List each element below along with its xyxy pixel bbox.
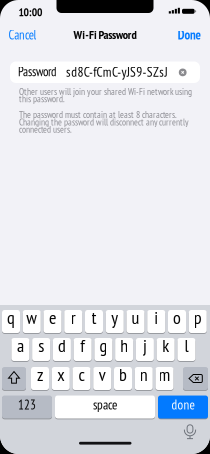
button[interactable]: b	[114, 366, 132, 390]
staticText: space	[93, 396, 117, 413]
staticText: a	[17, 334, 24, 357]
staticText: n	[140, 363, 148, 386]
staticText: The password must contain at least 8 cha…	[19, 108, 177, 121]
staticText: sd8C-fCmC-yJS9-SZsJ	[66, 63, 167, 80]
button[interactable]: e	[43, 309, 61, 333]
staticText: o	[173, 306, 181, 329]
staticText: x	[57, 363, 64, 386]
button[interactable]: r	[64, 309, 82, 333]
staticText: done	[171, 396, 194, 413]
staticText: t	[91, 306, 96, 329]
staticText: 123	[18, 396, 36, 413]
staticText: y	[111, 306, 118, 329]
staticText: z	[37, 363, 43, 386]
button[interactable]: Shift	[2, 366, 26, 390]
button[interactable]: x	[52, 366, 70, 390]
button[interactable]: q	[2, 309, 20, 333]
button[interactable]: y	[106, 309, 124, 333]
button[interactable]: m	[155, 366, 173, 390]
button[interactable]: n	[135, 366, 153, 390]
button[interactable]: p	[189, 309, 207, 333]
staticText: u	[131, 306, 139, 329]
staticText: g	[99, 334, 107, 357]
button[interactable]: z	[31, 366, 49, 390]
staticText: f	[80, 334, 85, 357]
button[interactable]: Password, sd8C-fCmC-yJS9-SZsJ	[10, 61, 200, 83]
button[interactable]: c	[72, 366, 90, 390]
staticText: connected users.	[19, 123, 72, 135]
button[interactable]: Done	[178, 27, 200, 43]
button[interactable]: k	[157, 337, 175, 361]
staticText: i	[154, 306, 158, 329]
staticText: e	[49, 306, 56, 329]
button[interactable]: s	[32, 337, 50, 361]
button[interactable]: g	[94, 337, 112, 361]
staticText: Done	[178, 27, 200, 43]
button[interactable]: w	[23, 309, 41, 333]
staticText: v	[99, 363, 106, 386]
staticText: l	[184, 334, 188, 357]
staticText: Other users will join your shared Wi-Fi …	[19, 85, 192, 97]
staticText: m	[158, 363, 170, 386]
staticText: r	[71, 306, 76, 329]
staticText: d	[58, 334, 66, 357]
staticText: b	[119, 363, 127, 386]
button[interactable]: 123	[2, 395, 52, 419]
staticText: p	[194, 306, 202, 329]
button[interactable]: Delete	[183, 366, 208, 390]
button[interactable]: u	[126, 309, 144, 333]
button[interactable]: d	[53, 337, 71, 361]
staticText: w	[26, 306, 37, 329]
button[interactable]: Dictation	[183, 424, 197, 440]
button[interactable]: i	[147, 309, 165, 333]
staticText: Wi-Fi Password	[73, 27, 136, 42]
button[interactable]: h	[115, 337, 133, 361]
staticText: this password.	[19, 93, 65, 105]
button[interactable]: done	[158, 395, 208, 419]
staticText: q	[7, 306, 15, 329]
staticText: Cancel	[8, 27, 36, 43]
staticText: c	[78, 363, 84, 386]
button[interactable]: space	[55, 395, 155, 419]
button[interactable]: l	[177, 337, 195, 361]
staticText: Password	[18, 63, 56, 80]
button[interactable]: v	[93, 366, 111, 390]
button[interactable]: a	[11, 337, 29, 361]
staticText: k	[162, 334, 169, 357]
staticText: s	[38, 334, 44, 357]
button[interactable]: t	[85, 309, 103, 333]
staticText: j	[143, 334, 147, 357]
staticText: h	[120, 334, 128, 357]
button[interactable]: j	[136, 337, 154, 361]
button[interactable]: f	[74, 337, 92, 361]
staticText: Changing the password will disconnect an…	[19, 116, 189, 128]
button[interactable]: Cancel	[8, 27, 36, 43]
button[interactable]: o	[168, 309, 186, 333]
staticText: 10:00	[18, 5, 42, 19]
